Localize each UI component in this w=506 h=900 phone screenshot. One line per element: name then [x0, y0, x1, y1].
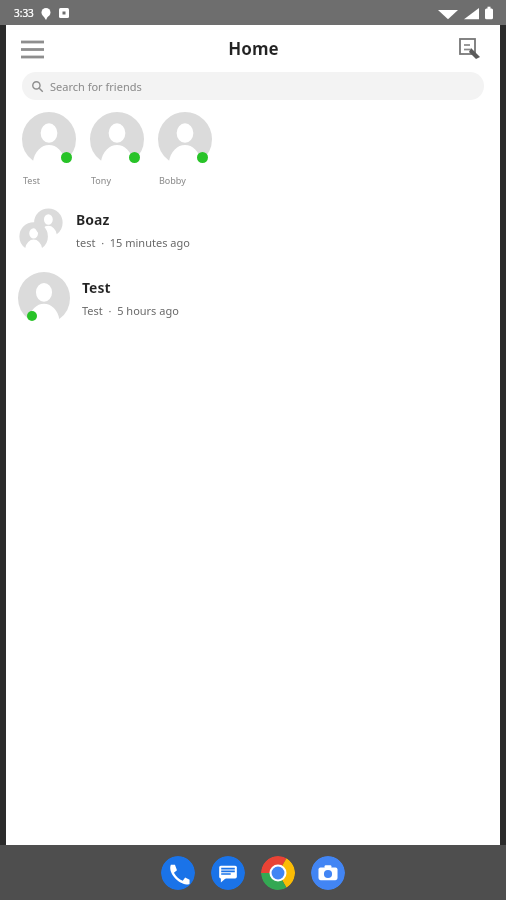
- staticText: Boaz: [76, 210, 110, 229]
- button[interactable]: Test: [6, 264, 500, 332]
- button[interactable]: Test: [18, 112, 86, 186]
- staticText: Test · 5 hours ago: [82, 303, 179, 318]
- button[interactable]: Chrome: [261, 856, 295, 890]
- button[interactable]: Camera: [311, 856, 345, 890]
- button[interactable]: Messages: [211, 856, 245, 890]
- staticText: Search for friends: [50, 79, 142, 94]
- button[interactable]: New message: [450, 29, 490, 69]
- button[interactable]: Search for friends: [22, 72, 484, 100]
- staticText: Test: [23, 174, 41, 186]
- button[interactable]: Phone: [161, 856, 195, 890]
- staticText: 3:33: [14, 6, 34, 20]
- staticText: Bobby: [159, 174, 186, 186]
- staticText: test · 15 minutes ago: [76, 235, 190, 250]
- button[interactable]: Tony: [86, 112, 154, 186]
- button[interactable]: Open navigation menu: [12, 29, 52, 69]
- staticText: Test: [82, 278, 111, 297]
- staticText: Tony: [91, 174, 111, 186]
- staticText: Home: [228, 37, 279, 60]
- button[interactable]: Boaz: [6, 196, 500, 264]
- button[interactable]: Bobby: [154, 112, 222, 186]
